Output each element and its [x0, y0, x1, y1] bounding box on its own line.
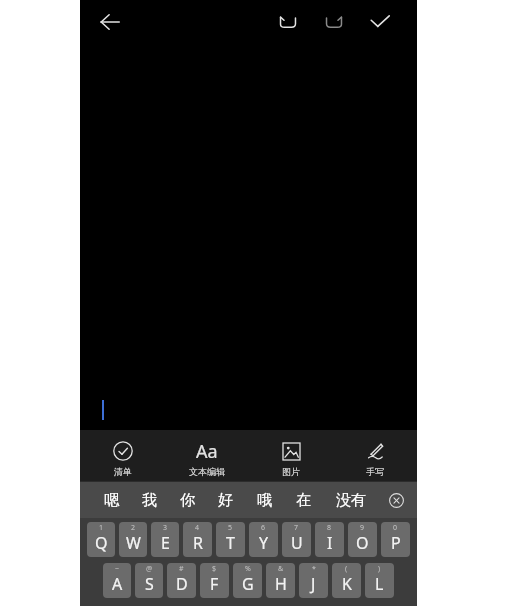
- staticText: K: [342, 573, 352, 595]
- staticText: Aa: [196, 439, 218, 463]
- staticText: H: [275, 573, 287, 595]
- button[interactable]: 清单: [80, 435, 165, 477]
- staticText: $: [212, 564, 217, 574]
- staticText: @: [146, 564, 153, 574]
- button[interactable]: &: [266, 563, 295, 598]
- staticText: 6: [261, 523, 266, 533]
- staticText: W: [126, 532, 141, 554]
- staticText: O: [356, 532, 369, 554]
- staticText: 没有: [336, 491, 366, 510]
- staticText: 3: [163, 523, 168, 533]
- staticText: Q: [95, 532, 108, 554]
- button[interactable]: 8: [315, 522, 344, 557]
- staticText: Y: [259, 532, 269, 554]
- staticText: 图片: [282, 466, 300, 477]
- button[interactable]: 好: [206, 491, 245, 510]
- staticText: T: [226, 532, 235, 554]
- button[interactable]: 没有: [323, 491, 379, 510]
- staticText: 0: [393, 523, 398, 533]
- button[interactable]: 嗯: [92, 491, 130, 510]
- staticText: 4: [195, 523, 200, 533]
- button[interactable]: 在: [284, 491, 323, 510]
- button[interactable]: *: [299, 563, 328, 598]
- button[interactable]: $: [200, 563, 229, 598]
- staticText: ): [378, 564, 381, 574]
- button[interactable]: 1: [87, 522, 115, 557]
- button[interactable]: Close suggestions: [379, 493, 413, 508]
- button[interactable]: 你: [168, 491, 206, 510]
- button[interactable]: ~: [103, 563, 131, 598]
- button[interactable]: 9: [348, 522, 377, 557]
- staticText: ~: [115, 564, 120, 574]
- staticText: 好: [218, 491, 233, 510]
- staticText: E: [161, 532, 170, 554]
- staticText: U: [291, 532, 303, 554]
- button[interactable]: (: [332, 563, 361, 598]
- staticText: F: [210, 573, 219, 595]
- staticText: 嗯: [104, 491, 119, 510]
- staticText: I: [327, 532, 333, 554]
- staticText: 5: [228, 523, 233, 533]
- staticText: %: [245, 564, 251, 574]
- staticText: 哦: [257, 491, 272, 510]
- button[interactable]: 5: [216, 522, 245, 557]
- button[interactable]: 3: [151, 522, 179, 557]
- staticText: 清单: [114, 466, 132, 477]
- staticText: (: [345, 564, 348, 574]
- button[interactable]: Aa: [165, 435, 249, 477]
- button[interactable]: #: [167, 563, 196, 598]
- staticText: *: [312, 564, 316, 574]
- staticText: 8: [327, 523, 332, 533]
- staticText: 在: [296, 491, 311, 510]
- staticText: 7: [294, 523, 299, 533]
- staticText: 手写: [366, 466, 384, 477]
- button[interactable]: %: [233, 563, 262, 598]
- button[interactable]: 手写: [333, 435, 417, 477]
- button[interactable]: Redo: [314, 2, 354, 42]
- button[interactable]: 我: [130, 491, 168, 510]
- button[interactable]: 4: [183, 522, 212, 557]
- button[interactable]: 6: [249, 522, 278, 557]
- button[interactable]: 图片: [249, 435, 333, 477]
- staticText: G: [242, 573, 254, 595]
- button[interactable]: Back: [88, 2, 132, 42]
- staticText: L: [375, 573, 384, 595]
- button[interactable]: 0: [381, 522, 410, 557]
- button[interactable]: 哦: [245, 491, 284, 510]
- staticText: 9: [360, 523, 365, 533]
- staticText: 你: [180, 491, 195, 510]
- button[interactable]: Done: [360, 2, 400, 42]
- staticText: #: [179, 564, 184, 574]
- staticText: P: [391, 532, 401, 554]
- button[interactable]: 7: [282, 522, 311, 557]
- button[interactable]: ): [365, 563, 394, 598]
- staticText: J: [311, 573, 316, 595]
- staticText: S: [145, 573, 154, 595]
- staticText: A: [112, 573, 123, 595]
- staticText: 我: [142, 491, 157, 510]
- staticText: 1: [99, 523, 104, 533]
- staticText: D: [176, 573, 188, 595]
- staticText: 2: [131, 523, 136, 533]
- button[interactable]: @: [135, 563, 163, 598]
- button[interactable]: Undo: [268, 2, 308, 42]
- staticText: R: [193, 532, 203, 554]
- staticText: &: [278, 564, 284, 574]
- staticText: 文本编辑: [189, 466, 225, 477]
- button[interactable]: 2: [119, 522, 147, 557]
